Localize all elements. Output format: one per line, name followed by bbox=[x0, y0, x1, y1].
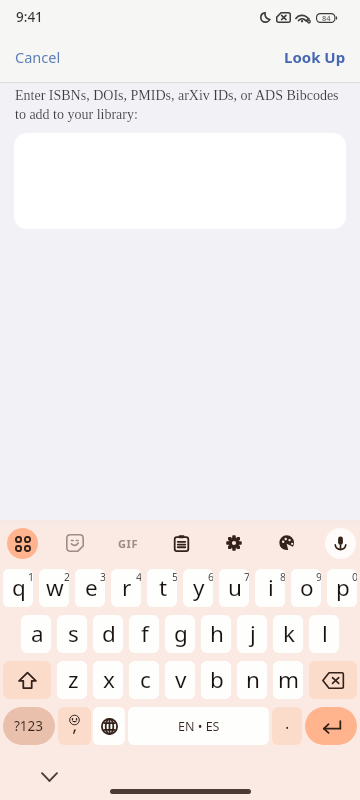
staticText: l bbox=[322, 618, 328, 649]
staticText: . bbox=[285, 712, 290, 734]
staticText: o bbox=[300, 572, 314, 603]
staticText: 6 bbox=[208, 570, 213, 584]
button[interactable]: f bbox=[129, 615, 159, 653]
staticText: q bbox=[12, 572, 26, 603]
staticText: b bbox=[210, 664, 224, 695]
staticText: v bbox=[175, 664, 187, 695]
button[interactable]: Settings bbox=[218, 527, 250, 559]
staticText: u bbox=[228, 572, 242, 603]
button[interactable]: i bbox=[255, 569, 285, 607]
button[interactable]: q bbox=[3, 569, 33, 607]
staticText: e bbox=[85, 572, 98, 603]
button[interactable]: y bbox=[183, 569, 213, 607]
staticText: 84 bbox=[322, 13, 331, 23]
staticText: d bbox=[102, 618, 116, 649]
button[interactable]: s bbox=[57, 615, 87, 653]
button[interactable]: Voice input bbox=[324, 527, 356, 559]
staticText: 5 bbox=[172, 570, 177, 584]
staticText: t bbox=[159, 572, 168, 603]
button[interactable]: a bbox=[21, 615, 51, 653]
button[interactable]: g bbox=[165, 615, 195, 653]
staticText: h bbox=[210, 618, 224, 649]
staticText: ?123 bbox=[14, 717, 44, 735]
staticText: 4 bbox=[136, 570, 141, 584]
button[interactable]: Clipboard bbox=[165, 527, 197, 559]
button[interactable]: l bbox=[309, 615, 339, 653]
button[interactable]: j bbox=[237, 615, 267, 653]
button[interactable]: t bbox=[147, 569, 177, 607]
button[interactable]: GIF bbox=[112, 527, 144, 559]
staticText: x bbox=[103, 664, 115, 695]
staticText: w bbox=[46, 572, 64, 603]
button[interactable]: Enter bbox=[305, 707, 357, 745]
staticText: 3 bbox=[100, 570, 105, 584]
button[interactable]: r bbox=[111, 569, 141, 607]
button[interactable]: ?123 bbox=[3, 707, 55, 745]
staticText: g bbox=[174, 618, 188, 649]
staticText: Cancel bbox=[15, 47, 61, 67]
button[interactable]: Hide keyboard bbox=[33, 761, 65, 793]
button[interactable]: EN • ES bbox=[128, 707, 269, 745]
button[interactable]: Look Up bbox=[270, 41, 360, 82]
staticText: i bbox=[268, 572, 274, 603]
staticText: 2 bbox=[64, 570, 69, 584]
staticText: c bbox=[140, 664, 151, 695]
button[interactable]: d bbox=[93, 615, 123, 653]
button[interactable]: c bbox=[129, 661, 159, 699]
button[interactable]: h bbox=[201, 615, 231, 653]
button[interactable]: v bbox=[165, 661, 195, 699]
staticText: 0 bbox=[352, 570, 357, 584]
staticText: Enter ISBNs, DOIs, PMIDs, arXiv IDs, or … bbox=[15, 88, 352, 122]
button[interactable]: e bbox=[75, 569, 105, 607]
staticText: s bbox=[68, 618, 79, 649]
staticText: z bbox=[68, 664, 79, 695]
button[interactable]: Change language bbox=[93, 707, 125, 745]
staticText: k bbox=[283, 618, 296, 649]
staticText: EN • ES bbox=[178, 718, 220, 735]
button[interactable]: Apps bbox=[6, 527, 38, 559]
button[interactable]: b bbox=[201, 661, 231, 699]
staticText: 8 bbox=[280, 570, 285, 584]
button[interactable]: Stickers bbox=[59, 527, 91, 559]
staticText: a bbox=[31, 618, 44, 649]
staticText: 9 bbox=[316, 570, 321, 584]
staticText: r bbox=[122, 572, 132, 603]
button[interactable]: k bbox=[273, 615, 303, 653]
staticText: m bbox=[278, 664, 300, 695]
button[interactable]: n bbox=[237, 661, 267, 699]
staticText: 7 bbox=[244, 570, 249, 584]
button[interactable]: u bbox=[219, 569, 249, 607]
staticText: 1 bbox=[28, 570, 33, 584]
button[interactable]: Theme bbox=[271, 527, 303, 559]
button[interactable]: p bbox=[327, 569, 357, 607]
button[interactable]: x bbox=[93, 661, 123, 699]
button[interactable]: Backspace bbox=[309, 661, 357, 699]
button[interactable]: Period bbox=[272, 707, 302, 745]
button[interactable]: Emoji bbox=[58, 707, 91, 745]
button[interactable]: Cancel bbox=[0, 41, 75, 82]
staticText: f bbox=[141, 618, 149, 649]
button[interactable]: Shift bbox=[3, 661, 51, 699]
staticText: Look Up bbox=[284, 47, 346, 67]
button[interactable]: o bbox=[291, 569, 321, 607]
staticText: y bbox=[193, 572, 205, 603]
staticText: n bbox=[246, 664, 260, 695]
staticText: j bbox=[250, 618, 256, 649]
staticText: p bbox=[336, 572, 350, 603]
button[interactable]: w bbox=[39, 569, 69, 607]
button[interactable]: z bbox=[57, 661, 87, 699]
button[interactable]: m bbox=[273, 661, 303, 699]
staticText: 9:41 bbox=[16, 8, 43, 26]
staticText: GIF bbox=[118, 536, 139, 551]
